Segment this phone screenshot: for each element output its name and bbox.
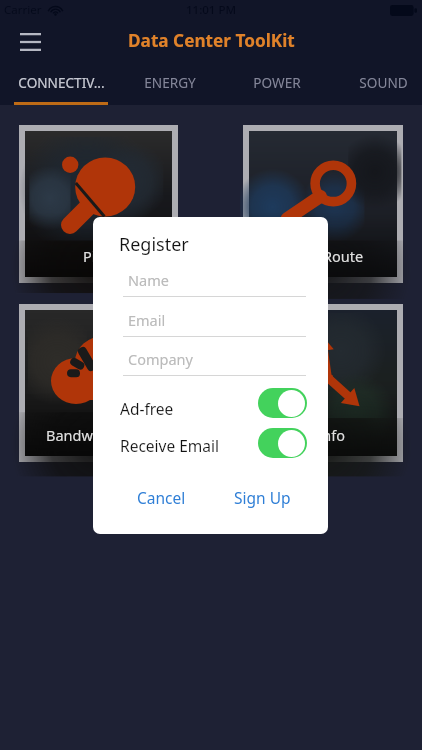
button[interactable]: Receive Email (258, 428, 307, 458)
staticText: IP Info (300, 425, 346, 445)
staticText: Bandwidth Test (46, 425, 151, 445)
button[interactable]: CONNECTIV... (8, 63, 115, 105)
staticText: Company (128, 349, 193, 369)
staticText: Name (128, 270, 169, 290)
button[interactable]: Email (123, 310, 306, 337)
button[interactable]: Ping (25, 131, 172, 277)
staticText: 11:01 PM (186, 2, 237, 18)
button[interactable]: ENERGY (116, 63, 223, 105)
staticText: Ping (83, 246, 114, 266)
button[interactable]: Name (123, 270, 306, 297)
button[interactable]: Trace Route (249, 131, 397, 277)
button[interactable]: Company (123, 349, 306, 376)
staticText: Data Center ToolKit (128, 29, 295, 52)
button[interactable]: POWER (223, 63, 330, 105)
staticText: Cancel (137, 487, 186, 508)
staticText: Register (119, 232, 189, 257)
staticText: Email (128, 310, 166, 330)
staticText: POWER (253, 73, 301, 92)
staticText: Receive Email (120, 435, 220, 456)
staticText: Sign Up (234, 487, 291, 508)
staticText: Trace Route (283, 246, 364, 266)
button[interactable]: Cancel (131, 484, 191, 510)
staticText: SOUND (359, 73, 408, 92)
button[interactable]: Ad-free (258, 388, 307, 418)
button[interactable]: Open navigation menu (10, 22, 50, 62)
button[interactable]: IP Info (249, 310, 397, 456)
staticText: ENERGY (144, 73, 196, 92)
staticText: Ad-free (120, 398, 174, 419)
button[interactable]: Sign Up (230, 484, 295, 510)
button[interactable]: SOUND (330, 63, 422, 105)
staticText: Carrier (4, 2, 42, 18)
button[interactable]: Bandwidth Test (25, 310, 172, 456)
staticText: CONNECTIV... (18, 73, 105, 92)
